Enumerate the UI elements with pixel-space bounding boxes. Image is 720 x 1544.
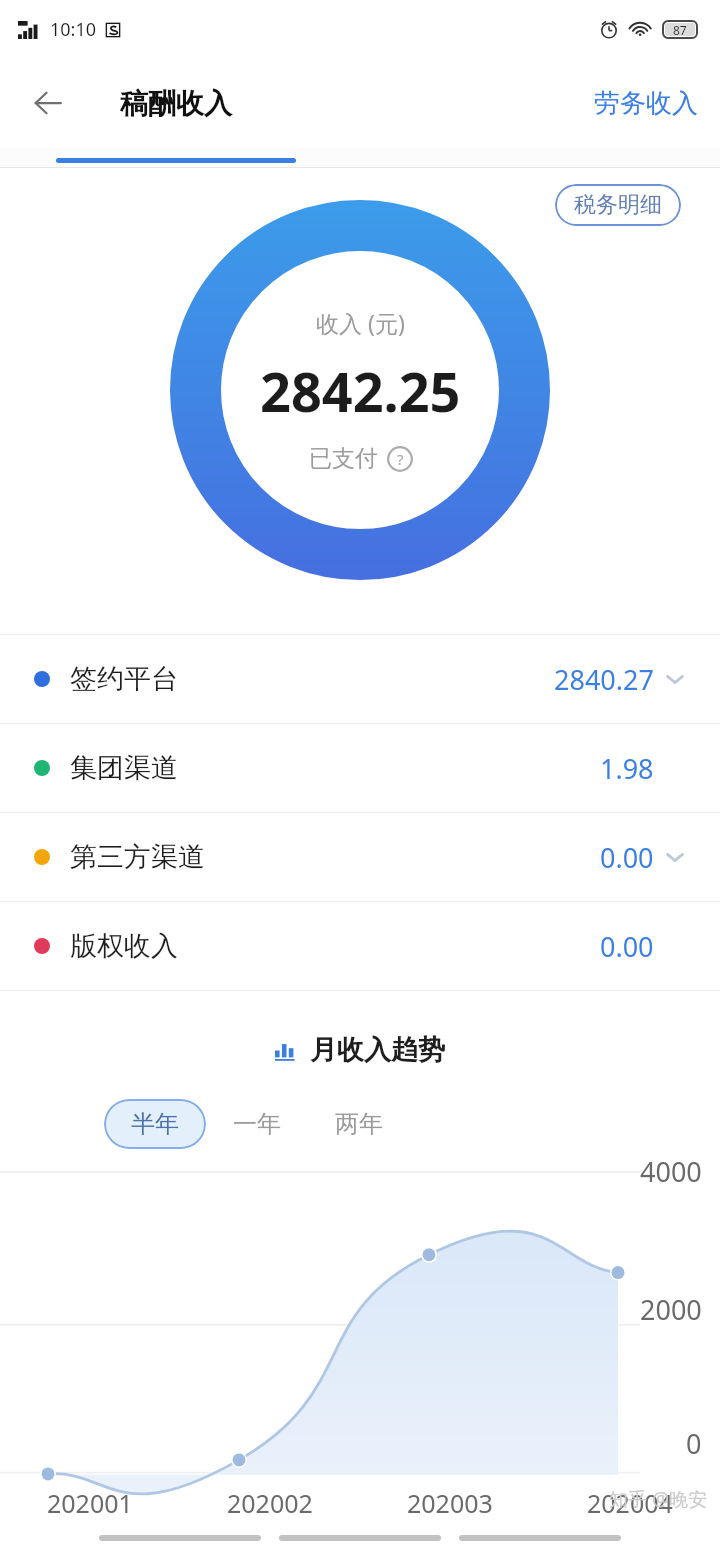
staticText: 202002 (227, 1486, 313, 1520)
staticText: 一年 (233, 1109, 281, 1139)
staticText: 半年 (131, 1109, 179, 1139)
staticText: 集团渠道 (70, 751, 178, 785)
button[interactable]: Back (16, 71, 80, 135)
staticText: 2842.25 (260, 354, 461, 428)
staticText: 月收入趋势 (310, 1033, 445, 1067)
staticText: 202001 (47, 1486, 133, 1520)
button[interactable]: 半年 (104, 1099, 206, 1149)
button[interactable]: 版权收入 (0, 902, 720, 990)
staticText: 0 (686, 1425, 702, 1462)
staticText: 4000 (640, 1153, 702, 1190)
button[interactable]: 第三方渠道 (0, 813, 720, 901)
button[interactable]: 税务明细 (555, 184, 681, 226)
staticText: 87 (673, 22, 687, 38)
staticText: 两年 (335, 1109, 383, 1139)
staticText: 202004 (587, 1486, 673, 1520)
staticText: 202003 (407, 1486, 493, 1520)
button[interactable]: Help (387, 446, 413, 472)
staticText: 已支付 (309, 444, 378, 473)
button[interactable]: 一年 (206, 1099, 308, 1149)
staticText: 2840.27 (554, 661, 654, 698)
staticText: 稿酬收入 (120, 86, 232, 121)
staticText: 收入 (元) (316, 307, 405, 338)
staticText: 10:10 (50, 17, 97, 42)
button[interactable]: 劳务收入 (586, 77, 706, 130)
staticText: 知乎 @晚安 (609, 1486, 708, 1512)
staticText: 版权收入 (70, 929, 178, 963)
staticText: 第三方渠道 (70, 840, 205, 874)
staticText: ? (397, 449, 404, 469)
staticText: 税务明细 (574, 191, 662, 219)
button[interactable]: 签约平台 (0, 635, 720, 723)
button[interactable]: 集团渠道 (0, 724, 720, 812)
staticText: 2000 (640, 1291, 702, 1328)
staticText: 0.00 (600, 839, 654, 876)
staticText: 劳务收入 (594, 87, 698, 120)
button[interactable]: 两年 (308, 1099, 410, 1149)
staticText: 1.98 (600, 750, 654, 787)
staticText: 签约平台 (70, 662, 178, 696)
staticText: 0.00 (600, 928, 654, 965)
